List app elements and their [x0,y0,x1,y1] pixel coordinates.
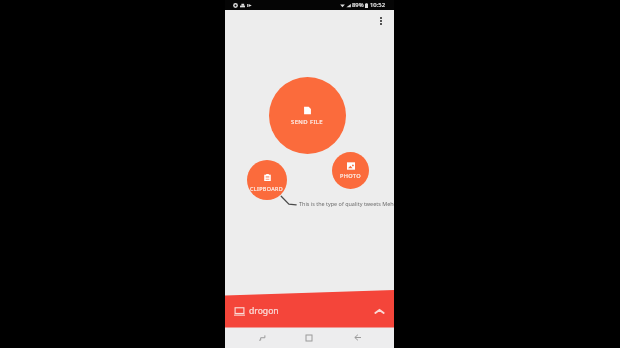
button[interactable]: Recents [252,328,272,348]
button[interactable]: SEND FILE [269,77,346,154]
staticText: This is the type of quality tweets Mehdi [299,200,394,207]
staticText: 89% [352,1,364,9]
button[interactable]: Back [347,328,367,348]
button[interactable]: Home [299,328,319,348]
other: Collapse [374,306,385,317]
button[interactable]: PHOTO [332,152,369,189]
staticText: PHOTO [340,172,361,180]
staticText: 10:52 [370,1,386,9]
button[interactable]: drogon [225,297,394,326]
button[interactable]: CLIPBOARD [247,160,287,200]
staticText: CLIPBOARD [250,185,284,192]
staticText: drogon [249,305,279,317]
button[interactable]: More options [373,13,389,29]
staticText: SEND FILE [291,118,324,126]
